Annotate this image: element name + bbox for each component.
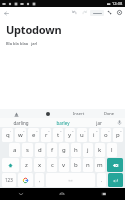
staticText: 123: [5, 177, 13, 183]
button[interactable]: jar: [83, 118, 114, 127]
staticText: 9: [108, 129, 110, 132]
staticText: 7: [84, 129, 86, 132]
button[interactable]: Comment: [105, 8, 114, 17]
button[interactable]: Back: [0, 188, 41, 200]
button[interactable]: m: [95, 158, 105, 172]
staticText: t: [57, 131, 60, 139]
staticText: darling: [13, 120, 29, 126]
staticText: Insert: [73, 111, 85, 116]
staticText: s: [26, 146, 29, 154]
button[interactable]: Google: [18, 173, 33, 187]
button[interactable]: ,: [35, 173, 44, 187]
button[interactable]: 123: [2, 173, 16, 187]
staticText: x: [38, 161, 42, 169]
button[interactable]: darling: [0, 118, 42, 127]
button[interactable]: 5: [53, 128, 63, 142]
button[interactable]: x: [34, 158, 45, 172]
staticText: 1: [10, 129, 12, 132]
staticText: a: [13, 146, 17, 154]
button[interactable]: g: [59, 143, 69, 157]
button[interactable]: 0: [113, 128, 123, 142]
button[interactable]: Home: [41, 188, 83, 200]
staticText: Uptodown: [6, 22, 62, 37]
button[interactable]: 2: [15, 128, 26, 142]
button[interactable]: Color: [44, 110, 52, 118]
staticText: d: [38, 146, 42, 154]
button[interactable]: Backspace: [107, 158, 123, 172]
staticText: i: [93, 131, 95, 139]
button[interactable]: a: [9, 143, 20, 157]
button[interactable]: v: [59, 158, 69, 172]
button[interactable]: c: [47, 158, 57, 172]
button[interactable]: Enter: [108, 173, 123, 187]
staticText: z: [25, 161, 28, 169]
button[interactable]: Back: [1, 8, 11, 18]
staticText: j: [87, 146, 89, 154]
staticText: q: [6, 131, 10, 139]
staticText: c: [51, 161, 54, 169]
staticText: Done: [104, 111, 115, 116]
button[interactable]: h: [71, 143, 81, 157]
button[interactable]: Recents: [83, 188, 125, 200]
staticText: 5: [60, 129, 62, 132]
staticText: f: [51, 146, 54, 154]
button[interactable]: 1: [2, 128, 13, 142]
staticText: v: [62, 161, 66, 169]
button[interactable]: j: [83, 143, 93, 157]
staticText: 6: [72, 129, 74, 132]
button[interactable]: l: [107, 143, 117, 157]
button[interactable]: Undo: [70, 8, 79, 17]
button[interactable]: Redo: [80, 8, 89, 17]
staticText: w: [18, 131, 23, 139]
staticText: e: [32, 131, 36, 139]
staticText: u: [80, 131, 84, 139]
staticText: barley: [56, 120, 70, 126]
staticText: 0: [120, 129, 122, 132]
button[interactable]: Format: [12, 110, 20, 118]
button[interactable]: 8: [89, 128, 99, 142]
button[interactable]: Insert: [71, 110, 87, 117]
staticText: g: [62, 146, 66, 154]
button[interactable]: 7: [77, 128, 87, 142]
staticText: 3: [36, 129, 38, 132]
button[interactable]: Done: [102, 110, 117, 117]
staticText: m: [97, 161, 103, 169]
button[interactable]: 9: [101, 128, 111, 142]
staticText: p: [116, 131, 120, 139]
staticText: y: [68, 131, 72, 139]
staticText: ,: [39, 177, 41, 183]
button[interactable]: Shift: [2, 158, 19, 172]
button[interactable]: barley: [42, 118, 83, 127]
button[interactable]: k: [95, 143, 105, 157]
button[interactable]: n: [83, 158, 93, 172]
button[interactable]: 3: [28, 128, 39, 142]
staticText: h: [74, 146, 78, 154]
staticText: Bla bla blaa jarl: [6, 41, 38, 46]
staticText: o: [104, 131, 108, 139]
staticText: b: [74, 161, 78, 169]
staticText: jar: [96, 120, 102, 126]
button[interactable]: [90, 10, 104, 16]
staticText: k: [98, 146, 102, 154]
button[interactable]: s: [22, 143, 33, 157]
staticText: l: [111, 146, 113, 154]
staticText: r: [45, 131, 48, 139]
button[interactable]: z: [21, 158, 32, 172]
staticText: 8: [96, 129, 98, 132]
button[interactable]: d: [35, 143, 45, 157]
button[interactable]: 4: [41, 128, 51, 142]
staticText: 12:08: [112, 1, 123, 6]
button[interactable]: Voice input: [114, 118, 125, 127]
staticText: .: [101, 177, 103, 183]
button[interactable]: b: [71, 158, 81, 172]
button[interactable]: More options: [115, 8, 124, 17]
button[interactable]: .: [97, 173, 106, 187]
staticText: 2: [23, 129, 25, 132]
staticText: 4: [48, 129, 50, 132]
button[interactable]: 6: [65, 128, 75, 142]
staticText: n: [86, 161, 90, 169]
button[interactable]: f: [47, 143, 57, 157]
